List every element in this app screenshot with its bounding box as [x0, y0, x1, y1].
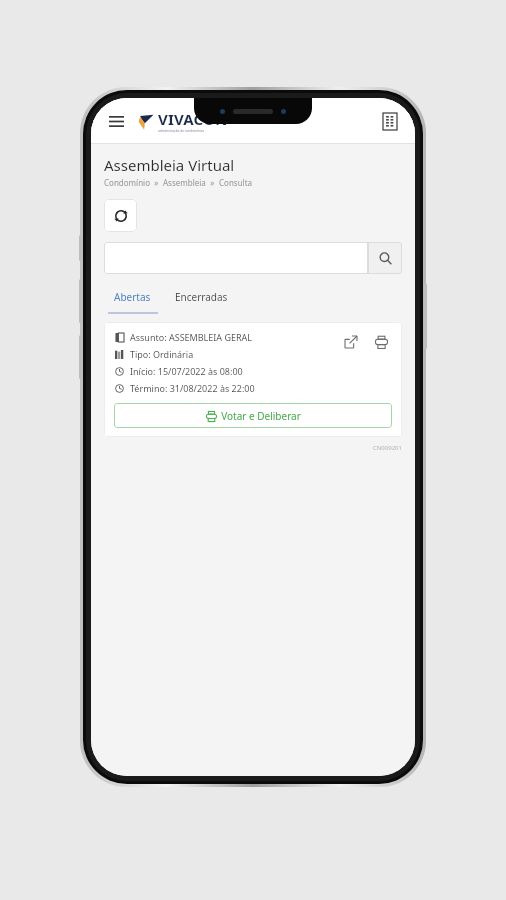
button[interactable] — [104, 242, 368, 274]
button[interactable]: Pesquisar — [368, 242, 402, 274]
staticText: Votar e Deliberar — [221, 409, 301, 423]
button[interactable]: Abrir — [340, 331, 362, 353]
button[interactable]: Votar e Deliberar — [114, 403, 392, 428]
staticText: administração de condomínios — [158, 129, 205, 133]
staticText: Assunto: ASSEMBLEIA GERAL — [130, 331, 253, 343]
staticText: Condomínio — [104, 177, 150, 188]
button[interactable]: Abertas — [104, 285, 161, 309]
staticText: » — [150, 177, 163, 188]
staticText: VIVACON — [158, 109, 228, 129]
button[interactable]: Imprimir — [370, 331, 392, 353]
button[interactable]: Condomínio — [377, 108, 403, 134]
staticText: Abertas — [114, 290, 151, 304]
staticText: Assembleia Virtual — [104, 155, 235, 175]
staticText: Tipo: Ordinária — [130, 348, 194, 360]
staticText: Início: 15/07/2022 às 08:00 — [130, 365, 243, 377]
button[interactable]: Atualizar — [104, 199, 137, 232]
staticText: Assembleia — [163, 177, 206, 188]
button[interactable]: Encerradas — [161, 285, 242, 309]
staticText: CN009201 — [373, 444, 402, 452]
staticText: Encerradas — [175, 290, 228, 304]
staticText: » — [206, 177, 219, 188]
staticText: Término: 31/08/2022 às 22:00 — [130, 382, 255, 394]
button[interactable]: Menu — [103, 108, 129, 134]
staticText: Consulta — [219, 177, 253, 188]
